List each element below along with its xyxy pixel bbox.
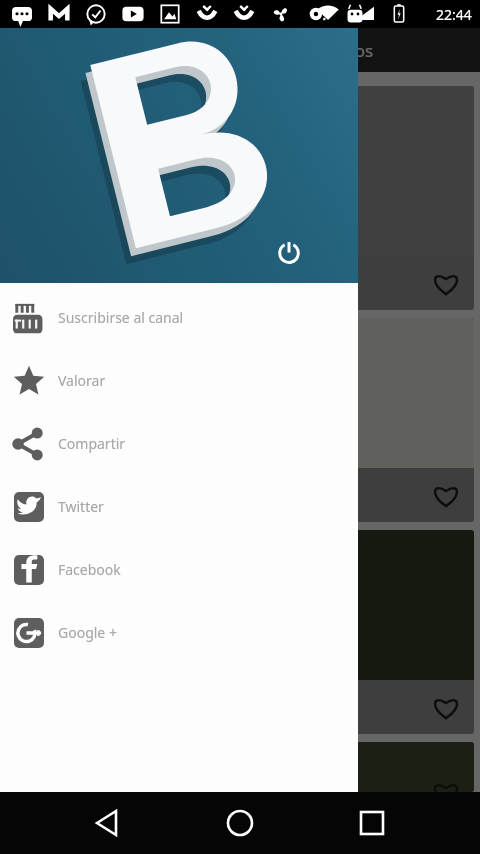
button[interactable]: Google + — [0, 601, 358, 664]
staticText: Twitter — [58, 497, 104, 516]
staticText: Valorar — [58, 371, 106, 390]
button[interactable]: Suscribirse al canal — [0, 286, 358, 349]
button[interactable]: Salir — [270, 233, 308, 271]
staticText: 00 años — [14, 495, 66, 514]
button[interactable]: Compartir — [0, 412, 358, 475]
staticText: Google + — [58, 623, 117, 642]
button[interactable]: Facebook — [0, 538, 358, 601]
staticText: Suscribirse al canal — [58, 308, 184, 327]
button[interactable]: Favorito — [426, 263, 466, 303]
staticText: Facebook — [58, 560, 121, 579]
staticText: Compartir — [58, 434, 126, 453]
button[interactable]: Inicio — [200, 792, 280, 854]
button[interactable]: Favorito — [426, 475, 466, 515]
button[interactable]: e mata — [6, 530, 474, 734]
staticText: Favoritos — [300, 39, 374, 62]
button[interactable]: Favorito — [6, 742, 474, 792]
staticText: 22:44 — [436, 5, 472, 24]
button[interactable]: Favorito — [426, 687, 466, 727]
button[interactable]: Valorar — [0, 349, 358, 412]
button[interactable]: 1944 — [6, 86, 474, 310]
staticText: ubiera — [14, 476, 57, 495]
button[interactable]: ubiera — [6, 318, 474, 522]
button[interactable]: Twitter — [0, 475, 358, 538]
